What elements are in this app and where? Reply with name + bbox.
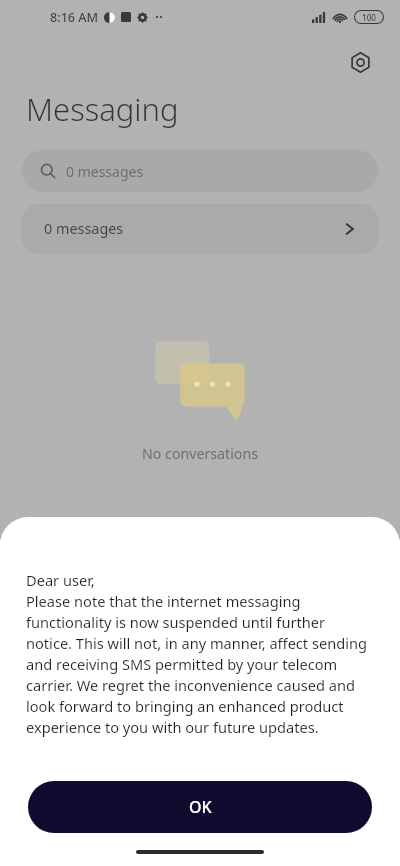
staticText: 100 bbox=[362, 12, 377, 23]
button[interactable]: Settings bbox=[340, 42, 380, 82]
staticText: OK bbox=[189, 796, 212, 818]
staticText: 8:16 AM bbox=[50, 9, 99, 26]
staticText: 0 messages bbox=[44, 219, 124, 239]
staticText: Messaging bbox=[26, 88, 179, 130]
staticText: 0 messages bbox=[66, 162, 144, 181]
staticText: No conversations bbox=[142, 444, 258, 463]
button[interactable]: OK bbox=[28, 781, 372, 833]
button[interactable]: 0 messages bbox=[22, 150, 378, 192]
button[interactable]: 0 messages bbox=[22, 204, 378, 254]
staticText: Dear user, Please note that the internet… bbox=[26, 570, 374, 737]
